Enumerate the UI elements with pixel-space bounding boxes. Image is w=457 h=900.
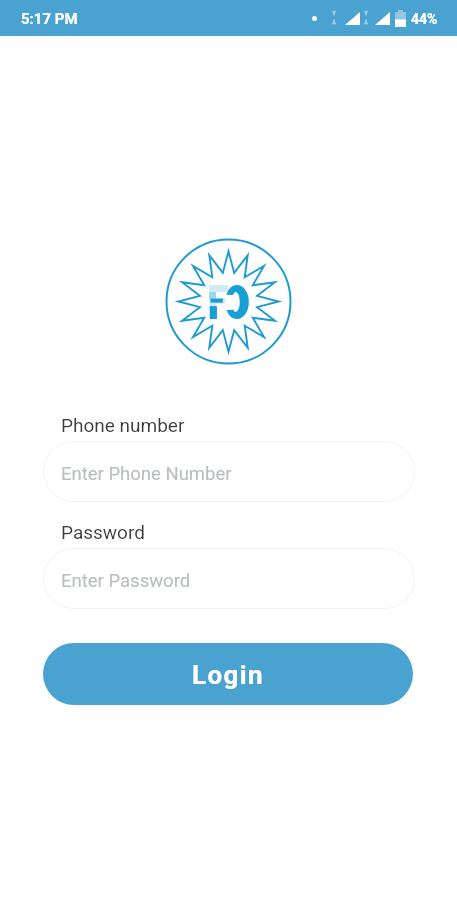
- staticText: 5:17 PM: [21, 10, 78, 28]
- button[interactable]: Login: [43, 643, 413, 705]
- button[interactable]: Enter Phone Number: [43, 441, 415, 502]
- staticText: Password: [61, 521, 145, 543]
- staticText: Login: [192, 660, 265, 690]
- staticText: Phone number: [61, 414, 185, 436]
- button[interactable]: Enter Password: [43, 548, 415, 609]
- other: Notification: [312, 16, 317, 21]
- other: SIM 2: [363, 10, 369, 25]
- other: SIM 1: [331, 10, 337, 25]
- other: Battery 44 percent: [395, 10, 406, 27]
- staticText: Enter Phone Number: [61, 463, 232, 485]
- staticText: 44%: [411, 11, 438, 27]
- other: Mobile signal 2: [375, 12, 390, 25]
- staticText: Enter Password: [61, 570, 191, 592]
- other: FC logo: [165, 238, 292, 365]
- other: Mobile signal 1: [345, 12, 360, 25]
